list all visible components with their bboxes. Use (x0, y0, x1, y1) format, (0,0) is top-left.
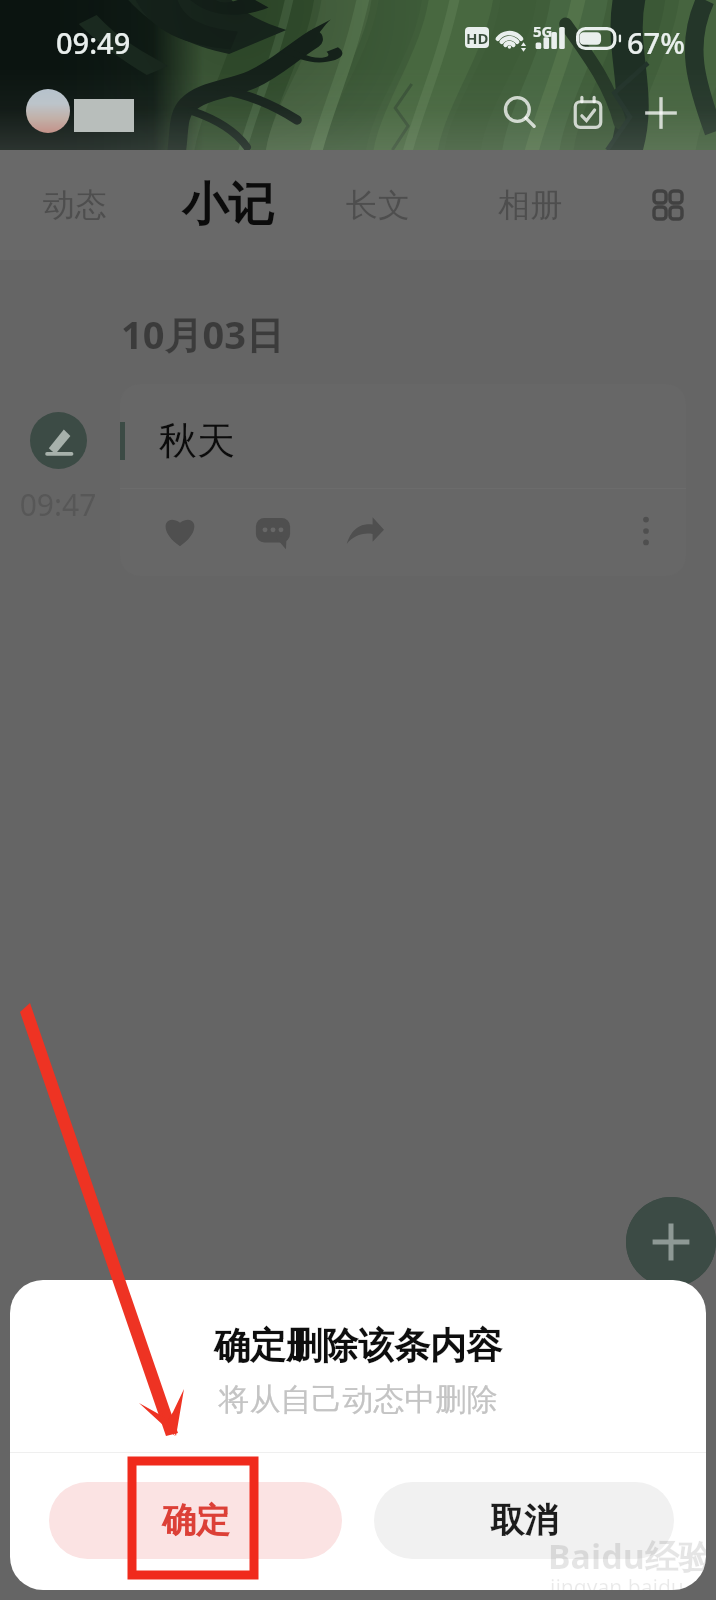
staticText: Baidu经验 (548, 1533, 706, 1579)
staticText: 相册 (498, 185, 562, 225)
staticText: 确定 (162, 1499, 230, 1542)
button[interactable]: More (622, 507, 670, 555)
button[interactable]: 确定 (49, 1482, 342, 1559)
staticText: jingyan.baidu.com (550, 1573, 706, 1590)
staticText: 67% (627, 23, 685, 62)
button[interactable]: Add (634, 86, 688, 140)
button[interactable]: Search (493, 86, 547, 140)
button[interactable]: Share (341, 507, 389, 555)
staticText: 09:49 (56, 23, 131, 62)
button[interactable]: New note (626, 1197, 716, 1287)
button[interactable]: Calendar (561, 86, 615, 140)
button[interactable]: 取消 (374, 1482, 674, 1559)
button[interactable]: 小记 (153, 150, 303, 260)
button[interactable]: Edit note (30, 412, 87, 469)
staticText: 将从自己动态中删除 (10, 1380, 706, 1419)
button[interactable]: 长文 (303, 150, 453, 260)
staticText: 5G (533, 21, 553, 41)
staticText: 确定删除该条内容 (10, 1323, 706, 1368)
staticText: 动态 (43, 185, 107, 225)
button[interactable]: Like (156, 507, 204, 555)
button[interactable]: 相册 (455, 150, 605, 260)
staticText: 取消 (490, 1499, 558, 1542)
button[interactable]: 动态 (0, 150, 150, 260)
staticText: 09:47 (8, 484, 108, 525)
staticText: HD (466, 28, 489, 48)
button[interactable]: Comment (249, 507, 297, 555)
staticText: 秋天 (159, 417, 235, 465)
button[interactable]: Grid view (620, 150, 716, 260)
button[interactable]: 秋天 (120, 384, 686, 576)
button[interactable]: New note (626, 1197, 716, 1287)
button[interactable]: Profile (26, 89, 70, 133)
staticText: 10月03日 (121, 308, 284, 360)
staticText: 长文 (346, 185, 410, 225)
staticText: 小记 (182, 176, 274, 234)
